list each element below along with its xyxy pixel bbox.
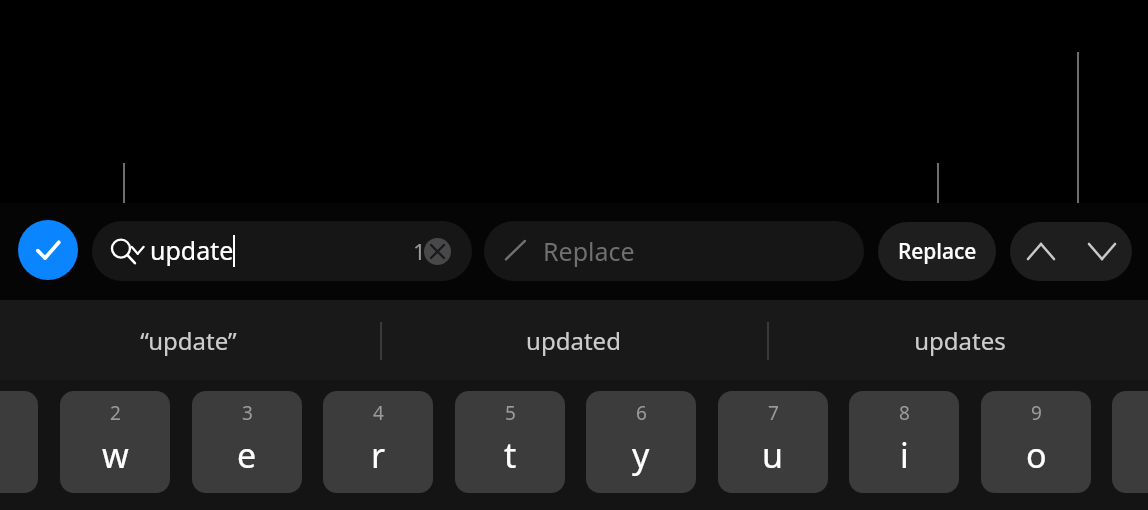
staticText: e xyxy=(237,432,257,478)
button[interactable]: 7 xyxy=(718,391,828,493)
staticText: 9 xyxy=(1031,400,1042,426)
button[interactable]: updates xyxy=(770,300,1148,380)
staticText: 7 xyxy=(768,400,779,426)
button[interactable]: Next match xyxy=(1071,222,1132,281)
button[interactable]: “update” xyxy=(0,300,378,380)
staticText: w xyxy=(102,432,129,478)
button[interactable]: 2 xyxy=(60,391,170,493)
button[interactable]: 4 xyxy=(323,391,433,493)
staticText: 4 xyxy=(373,400,384,426)
button[interactable]: Replace xyxy=(484,221,864,281)
button[interactable] xyxy=(1112,391,1148,493)
button[interactable]: 8 xyxy=(849,391,959,493)
staticText: Replace xyxy=(543,234,635,268)
button[interactable]: Replace xyxy=(878,222,996,281)
staticText: 8 xyxy=(899,400,910,426)
staticText: i xyxy=(900,432,909,478)
staticText: “update” xyxy=(140,324,237,357)
staticText: updated xyxy=(526,324,621,357)
button[interactable]: Previous match xyxy=(1010,222,1071,281)
staticText: u xyxy=(762,432,784,478)
button[interactable]: 9 xyxy=(981,391,1091,493)
staticText: 1 xyxy=(413,236,426,266)
staticText: t xyxy=(504,432,517,478)
staticText: update xyxy=(150,233,234,267)
button[interactable]: Clear search xyxy=(424,238,451,265)
button[interactable]: update xyxy=(92,221,472,281)
staticText: r xyxy=(371,432,386,478)
staticText: o xyxy=(1026,432,1047,478)
button[interactable]: 6 xyxy=(586,391,696,493)
button[interactable]: 3 xyxy=(192,391,302,493)
button[interactable] xyxy=(0,391,38,493)
staticText: 6 xyxy=(636,400,647,426)
button[interactable]: 5 xyxy=(455,391,565,493)
button[interactable]: updated xyxy=(383,300,763,380)
staticText: 2 xyxy=(110,400,121,426)
staticText: y xyxy=(632,432,650,478)
staticText: Replace xyxy=(898,237,977,266)
staticText: 5 xyxy=(505,400,516,426)
staticText: updates xyxy=(914,324,1006,357)
button[interactable]: Done xyxy=(18,220,78,280)
staticText: 3 xyxy=(242,400,253,426)
